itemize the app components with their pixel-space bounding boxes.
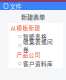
staticText: 从模板新建 bbox=[10, 23, 40, 31]
staticText: 新建表单 bbox=[21, 12, 45, 21]
button[interactable]: 产品公司 bbox=[8, 50, 63, 59]
button[interactable]: 客户资料库 bbox=[8, 59, 63, 68]
button[interactable]: 收集表或问卷 bbox=[8, 41, 63, 50]
button[interactable]: 从模板新建 bbox=[8, 23, 63, 32]
staticText: 智能表格 bbox=[23, 32, 47, 40]
button[interactable]: 文件 bbox=[0, 2, 66, 10]
staticText: 收集表或问卷 bbox=[23, 37, 53, 54]
button[interactable]: 智能表格 bbox=[8, 32, 63, 41]
staticText: 产品公司 bbox=[16, 50, 40, 58]
staticText: 客户资料库 bbox=[23, 59, 53, 67]
staticText: 文件 bbox=[9, 2, 21, 10]
